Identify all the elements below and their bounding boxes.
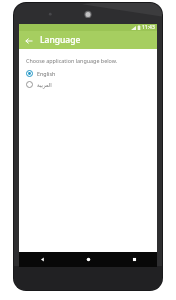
button[interactable]: Home <box>65 252 111 267</box>
staticText: English <box>37 70 56 77</box>
button[interactable]: Navigate up <box>22 34 35 47</box>
button[interactable]: العربية <box>26 79 151 90</box>
staticText: Language <box>40 34 81 46</box>
staticText: العربية <box>37 82 52 88</box>
button[interactable]: Recent apps <box>111 252 157 267</box>
staticText: Choose application language below. <box>26 57 118 64</box>
button[interactable]: English <box>26 68 151 79</box>
button[interactable]: Back <box>19 252 65 267</box>
staticText: 11:43 <box>142 24 155 31</box>
